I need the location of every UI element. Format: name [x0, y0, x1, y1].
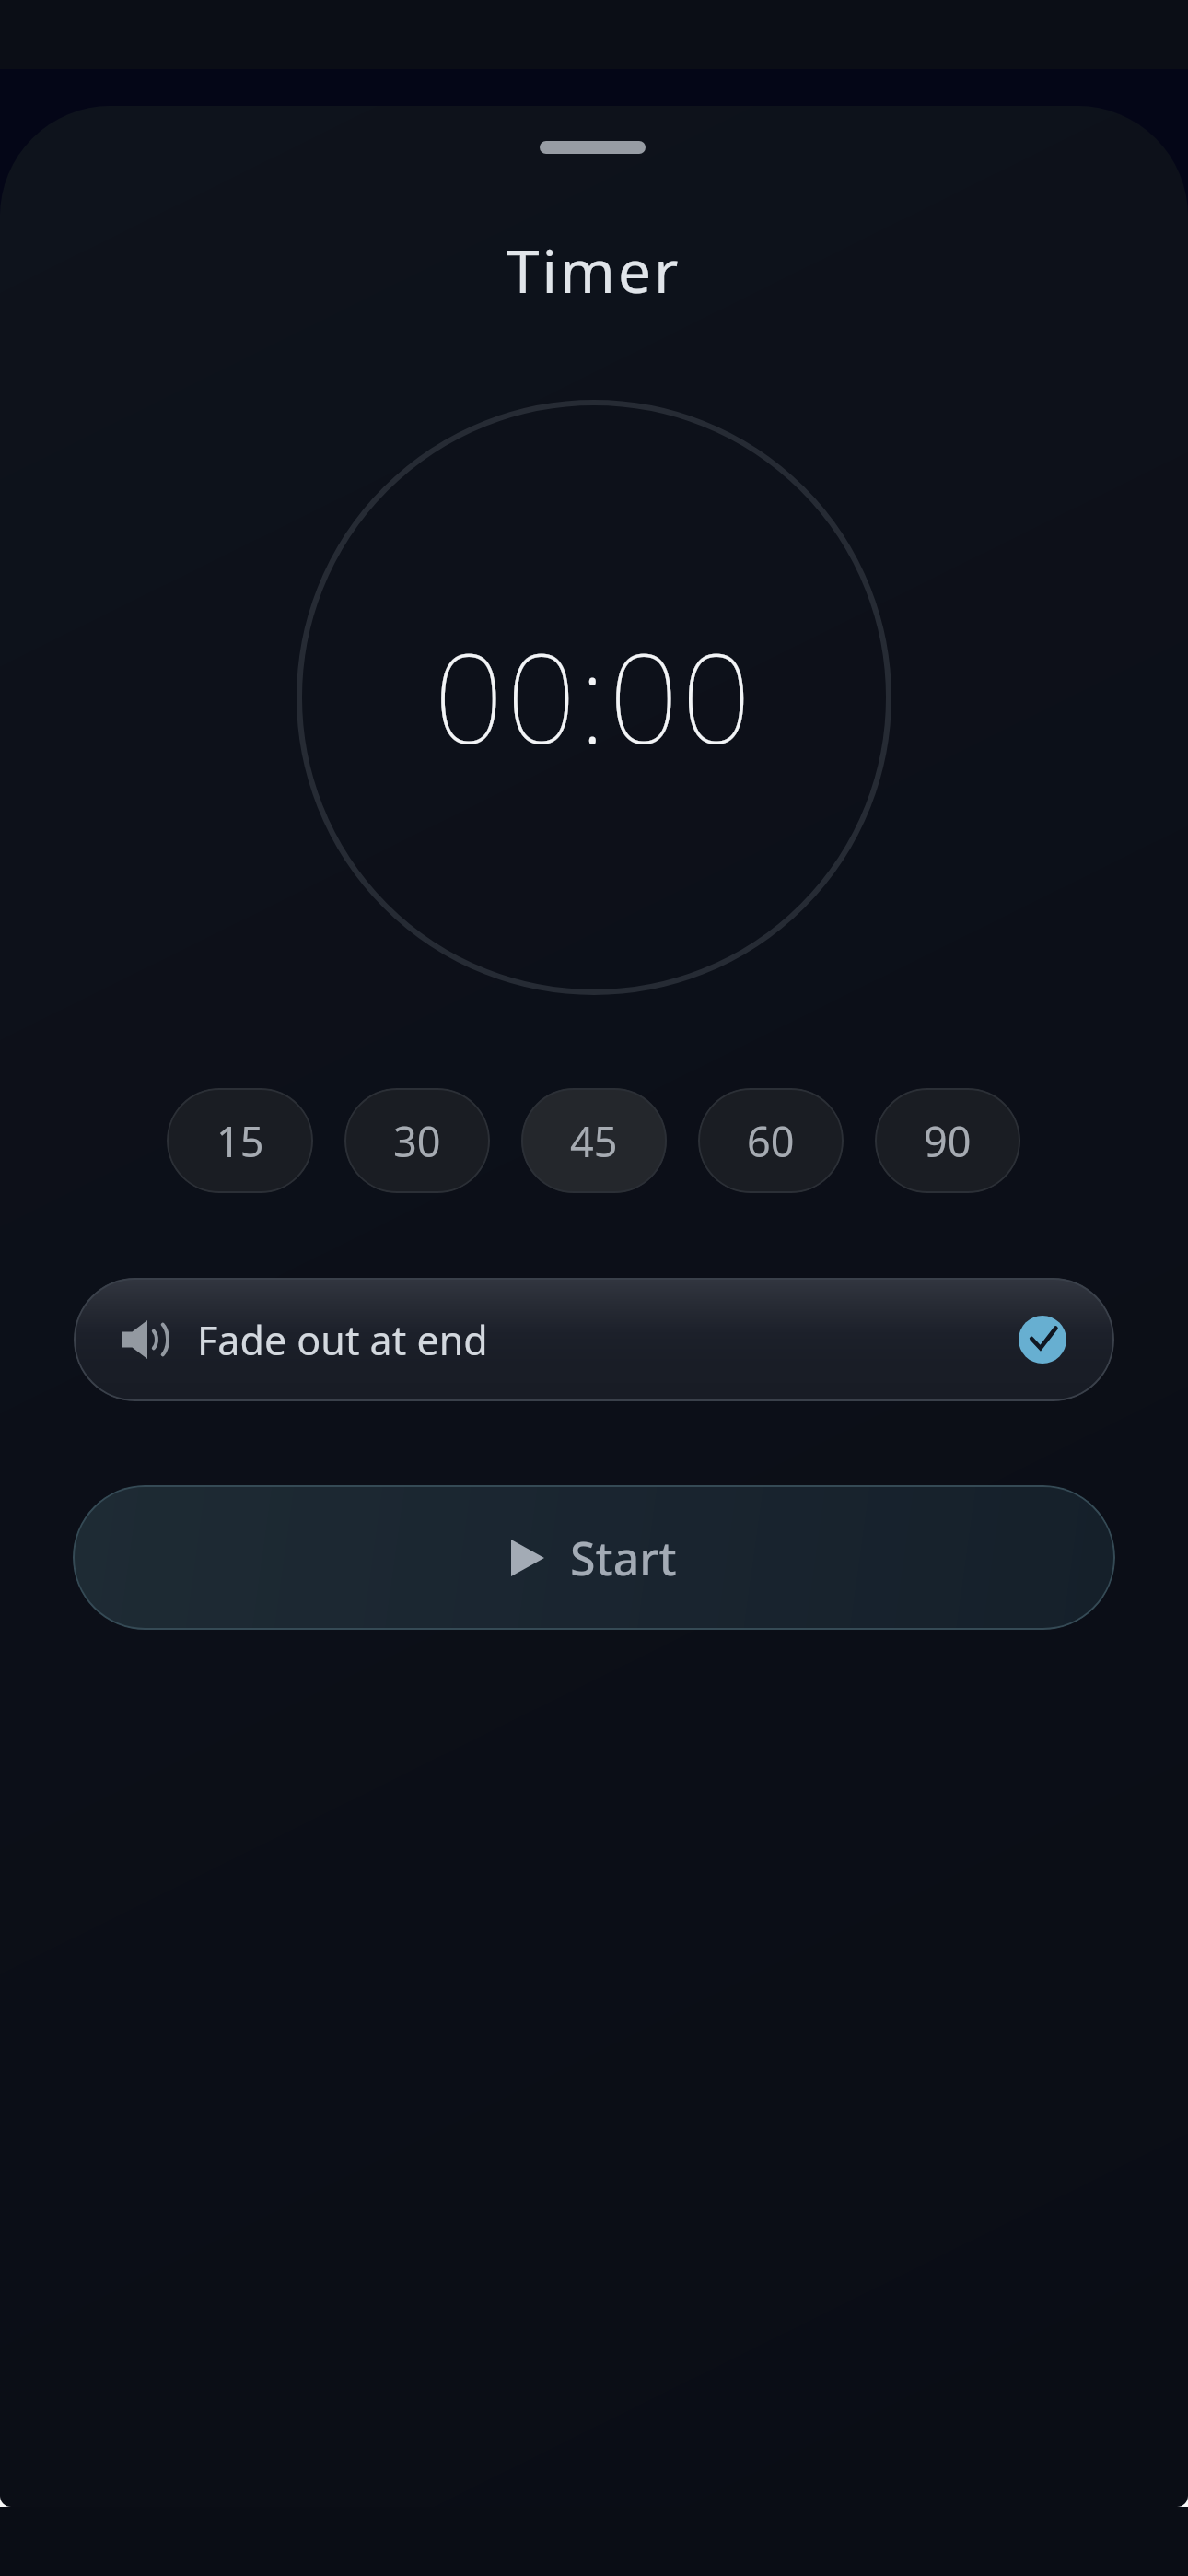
button[interactable]: 90	[875, 1088, 1020, 1193]
staticText: 45	[570, 1113, 618, 1169]
button[interactable]: 45	[521, 1088, 667, 1193]
button[interactable]: Drag handle	[540, 141, 646, 154]
staticText: 00:00	[434, 613, 754, 779]
staticText: Timer	[507, 230, 681, 310]
staticText: 90	[924, 1113, 972, 1169]
button[interactable]: Start	[73, 1485, 1115, 1630]
staticText: Fade out at end	[197, 1313, 488, 1367]
button[interactable]: 30	[344, 1088, 490, 1193]
button[interactable]: 60	[698, 1088, 844, 1193]
staticText: Start	[570, 1527, 677, 1589]
staticText: 30	[393, 1113, 441, 1169]
button[interactable]: 15	[167, 1088, 313, 1193]
button[interactable]: Fade out at end	[74, 1278, 1114, 1401]
staticText: 60	[747, 1113, 795, 1169]
staticText: 15	[216, 1113, 264, 1169]
